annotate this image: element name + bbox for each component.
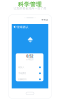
staticText: 0.52 xyxy=(26,54,33,58)
staticText: 手续费用 xyxy=(18,72,26,75)
staticText: ≈ ¥8220 xyxy=(26,58,33,61)
staticText: 收款人 xyxy=(18,66,24,69)
staticText: 让您的资金流向一目了然 xyxy=(13,7,46,10)
button[interactable]: 收款人 xyxy=(18,64,41,70)
staticText: 转账确认 xyxy=(17,25,29,29)
staticText: 到账时间 xyxy=(18,78,26,81)
button[interactable]: 手续费用 xyxy=(18,70,41,76)
button[interactable]: Back xyxy=(13,24,46,29)
button[interactable]: 到账时间 xyxy=(18,76,41,82)
staticText: 科学管理 xyxy=(18,1,42,8)
